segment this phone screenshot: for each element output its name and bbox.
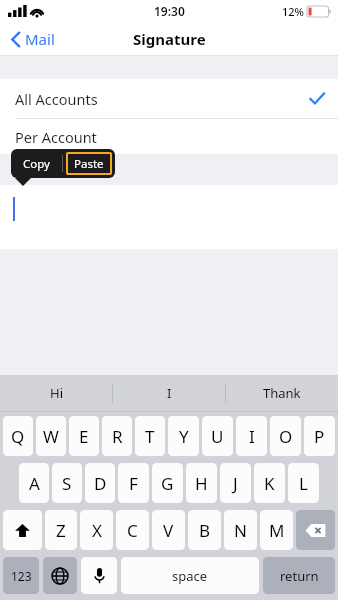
button[interactable]: O: [270, 416, 301, 456]
button[interactable]: D: [85, 463, 115, 503]
staticText: L: [299, 472, 308, 495]
staticText: R: [112, 425, 123, 448]
staticText: M: [269, 519, 285, 542]
button[interactable]: M: [260, 510, 293, 550]
staticText: Per Account: [15, 127, 97, 147]
staticText: 12%: [282, 4, 304, 19]
button[interactable]: E: [69, 416, 99, 456]
staticText: Y: [179, 425, 189, 448]
button[interactable]: W: [36, 416, 66, 456]
staticText: W: [43, 425, 59, 448]
button[interactable]: R: [102, 416, 132, 456]
button[interactable]: T: [135, 416, 165, 456]
staticText: F: [129, 472, 138, 495]
button[interactable]: C: [116, 510, 149, 550]
button[interactable]: Thank: [226, 375, 338, 411]
staticText: Mail: [25, 29, 55, 49]
button[interactable]: Change keyboard: [43, 557, 77, 594]
button[interactable]: U: [202, 416, 233, 456]
staticText: I: [249, 425, 255, 448]
staticText: G: [161, 472, 174, 495]
staticText: O: [279, 425, 293, 448]
button[interactable]: J: [220, 463, 251, 503]
button[interactable]: Mail: [8, 25, 58, 53]
button[interactable]: V: [152, 510, 185, 550]
staticText: return: [280, 567, 319, 585]
staticText: U: [211, 425, 224, 448]
staticText: 19:30: [154, 3, 185, 19]
staticText: I: [167, 384, 172, 402]
staticText: Q: [11, 425, 25, 448]
button[interactable]: Shift: [3, 510, 42, 550]
staticText: All Accounts: [15, 89, 98, 109]
button[interactable]: I: [236, 416, 267, 456]
button[interactable]: Backspace: [296, 510, 335, 550]
staticText: E: [79, 425, 89, 448]
staticText: 123: [11, 568, 32, 584]
staticText: Copy: [23, 156, 50, 172]
button[interactable]: space: [121, 557, 259, 594]
staticText: Z: [56, 519, 66, 542]
button[interactable]: G: [152, 463, 183, 503]
button[interactable]: Dictation: [81, 557, 117, 594]
staticText: D: [94, 472, 107, 495]
staticText: C: [127, 519, 138, 542]
button[interactable]: Y: [168, 416, 199, 456]
button[interactable]: return: [263, 557, 335, 594]
staticText: J: [233, 472, 238, 495]
button[interactable]: Z: [45, 510, 77, 550]
button[interactable]: All Accounts: [0, 79, 338, 118]
staticText: space: [172, 567, 208, 585]
button[interactable]: Per Account: [0, 119, 338, 154]
staticText: Thank: [263, 384, 301, 402]
button[interactable]: X: [80, 510, 113, 550]
staticText: Paste: [74, 156, 104, 172]
staticText: K: [264, 472, 275, 495]
staticText: A: [29, 472, 40, 495]
staticText: N: [234, 519, 247, 542]
button[interactable]: N: [224, 510, 257, 550]
staticText: S: [62, 472, 72, 495]
staticText: T: [145, 425, 155, 448]
button[interactable]: Paste: [66, 152, 112, 175]
staticText: X: [92, 519, 102, 542]
button[interactable]: A: [19, 463, 49, 503]
staticText: P: [314, 425, 325, 448]
staticText: V: [163, 519, 174, 542]
staticText: B: [199, 519, 211, 542]
button[interactable]: Hi: [0, 375, 112, 411]
button[interactable]: Q: [3, 416, 33, 456]
staticText: H: [195, 472, 208, 495]
button[interactable]: I: [113, 375, 225, 411]
button[interactable]: S: [52, 463, 82, 503]
staticText: Signature: [133, 29, 206, 49]
button[interactable]: P: [304, 416, 335, 456]
button[interactable]: B: [188, 510, 221, 550]
staticText: Hi: [50, 384, 63, 402]
button[interactable]: L: [288, 463, 319, 503]
button[interactable]: K: [254, 463, 285, 503]
other: Selected: [309, 92, 325, 105]
button[interactable]: H: [186, 463, 217, 503]
button[interactable]: 123: [3, 557, 39, 594]
button[interactable]: F: [118, 463, 149, 503]
button[interactable]: Copy: [11, 149, 62, 178]
